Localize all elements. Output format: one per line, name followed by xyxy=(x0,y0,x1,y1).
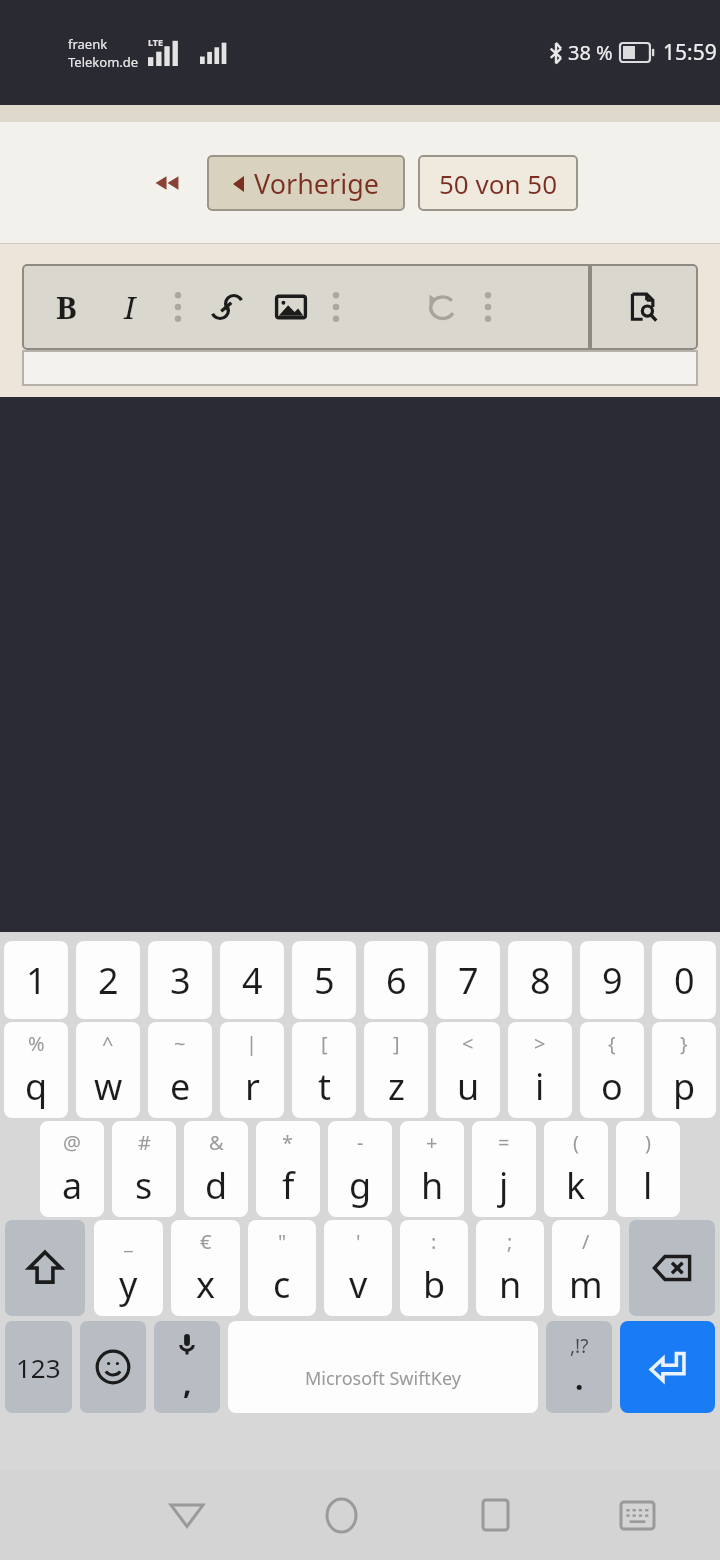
staticText: w xyxy=(94,1062,123,1111)
button[interactable]: Tastatur schließen xyxy=(600,1478,674,1552)
staticText: 7 xyxy=(458,956,479,1005)
button[interactable]: 8 xyxy=(508,941,572,1019)
staticText: a xyxy=(62,1161,83,1210)
staticText: | xyxy=(246,1030,258,1057)
button[interactable]: ' xyxy=(324,1220,392,1316)
button[interactable]: @ xyxy=(40,1121,104,1217)
button[interactable]: Microsoft SwiftKey xyxy=(228,1321,538,1413)
staticText: v xyxy=(349,1260,368,1309)
button[interactable]: 7 xyxy=(436,941,500,1019)
button[interactable]: Mikrofon und Komma xyxy=(154,1321,220,1413)
button[interactable]: - xyxy=(328,1121,392,1217)
staticText: - xyxy=(357,1129,364,1156)
staticText: d xyxy=(205,1161,228,1210)
staticText: u xyxy=(457,1062,480,1111)
button[interactable]: 0 xyxy=(652,941,716,1019)
button[interactable]: | xyxy=(220,1022,284,1118)
staticText: 38 % xyxy=(568,39,613,66)
staticText: / xyxy=(582,1228,590,1255)
staticText: z xyxy=(388,1062,405,1111)
button[interactable]: I xyxy=(110,279,150,335)
button[interactable]: Startbildschirm xyxy=(304,1478,378,1552)
button[interactable]: ; xyxy=(476,1220,544,1316)
staticText: Microsoft SwiftKey xyxy=(305,1366,461,1391)
button[interactable]: Bild einfügen xyxy=(268,279,314,335)
staticText: " xyxy=(278,1228,287,1255)
staticText: I xyxy=(124,286,136,328)
button[interactable]: > xyxy=(508,1022,572,1118)
staticText: } xyxy=(680,1030,688,1057)
button[interactable]: € xyxy=(171,1220,240,1316)
staticText: € xyxy=(200,1228,212,1255)
staticText: y xyxy=(119,1260,138,1309)
staticText: g xyxy=(349,1161,372,1210)
staticText: 50 von 50 xyxy=(439,166,558,201)
staticText: e xyxy=(170,1062,191,1111)
button[interactable]: * xyxy=(256,1121,320,1217)
staticText: t xyxy=(318,1062,331,1111)
button[interactable]: 4 xyxy=(220,941,284,1019)
staticText: h xyxy=(421,1161,444,1210)
button[interactable]: _ xyxy=(94,1220,163,1316)
button[interactable]: [ xyxy=(292,1022,356,1118)
staticText: [ xyxy=(321,1030,328,1057)
button[interactable]: ) xyxy=(616,1121,680,1217)
button[interactable]: Satzzeichen und Punkt xyxy=(546,1321,612,1413)
button[interactable]: 9 xyxy=(580,941,644,1019)
button[interactable]: + xyxy=(400,1121,464,1217)
button[interactable]: " xyxy=(248,1220,316,1316)
staticText: k xyxy=(566,1161,586,1210)
button[interactable]: 3 xyxy=(148,941,212,1019)
button[interactable]: Vorherige xyxy=(207,155,405,211)
button[interactable]: / xyxy=(552,1220,620,1316)
button[interactable]: 50 von 50 xyxy=(418,155,578,211)
staticText: @ xyxy=(63,1129,81,1156)
button[interactable]: } xyxy=(652,1022,716,1118)
staticText: x xyxy=(196,1260,216,1309)
staticText: # xyxy=(138,1129,151,1156)
button[interactable]: ~ xyxy=(148,1022,212,1118)
button[interactable]: Löschen xyxy=(629,1220,715,1316)
button[interactable]: B xyxy=(46,279,86,335)
staticText: % xyxy=(28,1030,45,1057)
staticText: : xyxy=(431,1228,437,1255)
staticText: 15:59 xyxy=(663,38,717,67)
button[interactable]: ( xyxy=(544,1121,608,1217)
button[interactable]: Vorschau xyxy=(590,264,698,350)
button[interactable]: < xyxy=(436,1022,500,1118)
button[interactable]: 2 xyxy=(76,941,140,1019)
staticText: { xyxy=(608,1030,616,1057)
button[interactable]: % xyxy=(4,1022,68,1118)
button[interactable]: ] xyxy=(364,1022,428,1118)
staticText: p xyxy=(673,1062,696,1111)
button[interactable]: Eingabe xyxy=(620,1321,715,1413)
staticText: r xyxy=(245,1062,260,1111)
button[interactable]: 123 xyxy=(5,1321,72,1413)
button[interactable]: Umschalt xyxy=(5,1220,85,1316)
button[interactable]: 6 xyxy=(364,941,428,1019)
staticText: + xyxy=(426,1129,438,1156)
button[interactable]: 1 xyxy=(4,941,68,1019)
button[interactable]: Zurück xyxy=(150,1478,224,1552)
button[interactable]: Link xyxy=(204,279,250,335)
staticText: ( xyxy=(573,1129,579,1156)
button[interactable]: ^ xyxy=(76,1022,140,1118)
button[interactable]: Emoji xyxy=(80,1321,146,1413)
staticText: 9 xyxy=(602,956,623,1005)
button[interactable]: = xyxy=(472,1121,536,1217)
staticText: Telekom.de xyxy=(68,53,139,71)
button[interactable]: & xyxy=(184,1121,248,1217)
staticText: n xyxy=(499,1260,522,1309)
button[interactable]: Erste Seite xyxy=(145,161,189,205)
staticText: 4 xyxy=(242,956,263,1005)
staticText: ' xyxy=(356,1228,361,1255)
staticText: ; xyxy=(507,1228,513,1255)
staticText: 1 xyxy=(26,956,47,1005)
button[interactable]: : xyxy=(400,1220,468,1316)
button[interactable]: Übersicht xyxy=(458,1478,532,1552)
button[interactable]: Rückgängig xyxy=(420,279,466,335)
button[interactable]: 5 xyxy=(292,941,356,1019)
button[interactable]: # xyxy=(112,1121,176,1217)
button[interactable]: { xyxy=(580,1022,644,1118)
staticText: _ xyxy=(124,1228,133,1255)
